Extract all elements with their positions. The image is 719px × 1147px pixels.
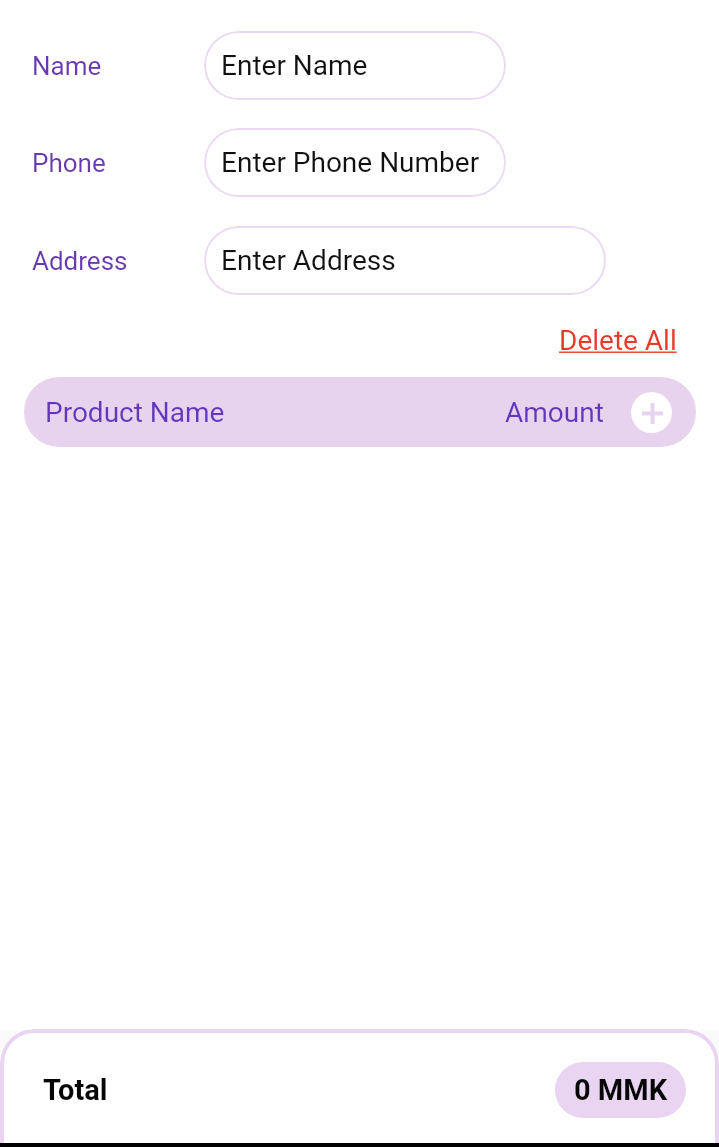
staticText: Delete All xyxy=(559,324,677,357)
staticText: Enter Address xyxy=(221,244,396,277)
staticText: Product Name xyxy=(45,396,225,429)
staticText: Enter Name xyxy=(221,49,368,82)
button[interactable]: Enter Phone Number xyxy=(204,128,506,197)
button[interactable]: 0 MMK xyxy=(555,1062,686,1118)
button[interactable]: Enter Name xyxy=(204,31,506,100)
button[interactable]: Enter Address xyxy=(204,226,606,295)
staticText: Amount xyxy=(505,396,604,429)
staticText: Name xyxy=(32,51,102,81)
button[interactable]: Delete All xyxy=(553,318,683,363)
button[interactable]: Product Name xyxy=(24,377,696,447)
staticText: Address xyxy=(32,246,128,276)
staticText: Enter Phone Number xyxy=(221,146,480,179)
staticText: Phone xyxy=(32,148,106,178)
staticText: Total xyxy=(43,1073,108,1107)
button[interactable]: Add product xyxy=(631,392,672,433)
staticText: 0 MMK xyxy=(574,1073,668,1107)
